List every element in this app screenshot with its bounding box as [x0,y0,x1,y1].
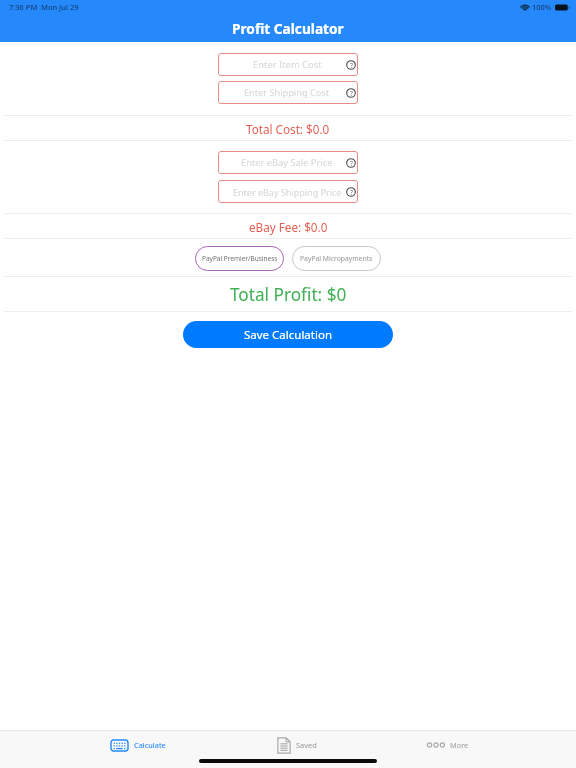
staticText: Enter eBay Shipping Price [233,186,342,198]
button[interactable]: Save Calculation [183,321,393,348]
button[interactable]: Enter Shipping Cost [218,81,358,104]
button[interactable]: Calculate [110,734,166,756]
staticText: PayPal Micropayments [300,254,373,263]
staticText: ? [350,89,353,98]
button[interactable]: Help [346,187,356,197]
button[interactable]: More [427,734,469,756]
button[interactable]: Enter eBay Shipping Price [218,180,358,203]
button[interactable]: Help [346,88,356,98]
staticText: Total Profit: $0 [230,283,347,306]
button[interactable]: Help [346,158,356,168]
staticText: Enter Item Cost [253,58,322,71]
button[interactable]: PayPal Premier/Business [195,246,284,271]
staticText: 100% [532,2,552,12]
staticText: PayPal Premier/Business [202,254,278,263]
staticText: Calculate [134,740,166,750]
staticText: Save Calculation [244,327,332,343]
staticText: Enter Shipping Cost [244,86,330,99]
button[interactable]: Enter Item Cost [218,53,358,76]
button[interactable]: Saved [277,734,317,756]
staticText: ? [350,61,353,70]
button[interactable]: Enter eBay Sale Price [218,151,358,174]
staticText: Saved [296,740,317,750]
staticText: eBay Fee: $0.0 [249,219,328,235]
button[interactable]: Help [346,60,356,70]
staticText: 7:36 PM [9,2,38,12]
staticText: More [450,740,469,750]
staticText: Total Cost: $0.0 [246,121,330,137]
staticText: ? [350,159,353,168]
staticText: Enter eBay Sale Price [241,156,333,169]
staticText: ? [350,188,353,197]
staticText: Profit Calculator [232,19,344,38]
staticText: Mon Jul 29 [41,2,79,12]
button[interactable]: PayPal Micropayments [292,246,381,271]
